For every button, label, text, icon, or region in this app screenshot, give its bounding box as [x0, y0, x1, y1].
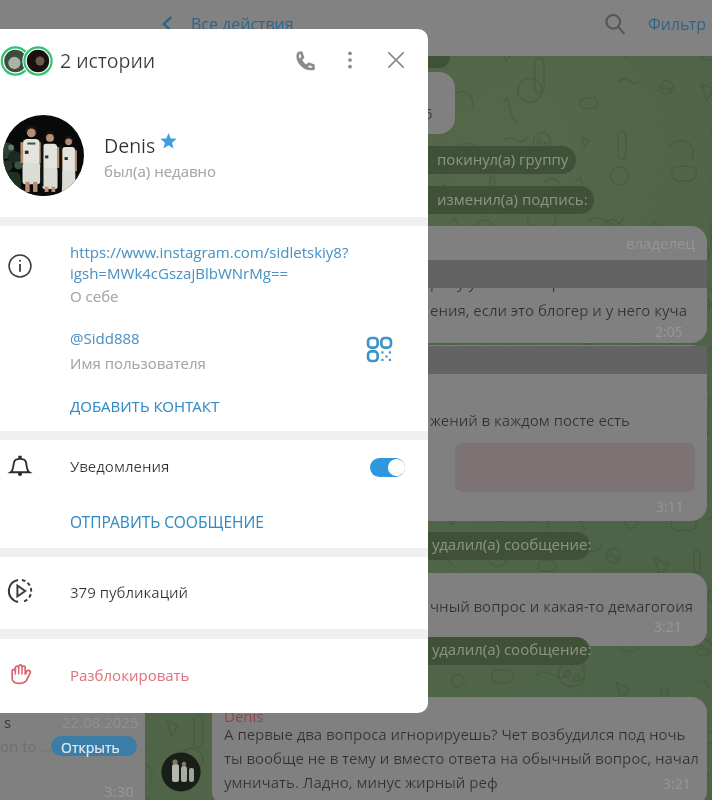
staticText: удалил(а) сообщение:	[432, 534, 592, 554]
button[interactable]: Разблокировать	[0, 639, 428, 713]
button[interactable]: Denis	[0, 91, 428, 217]
button[interactable]: Search	[592, 0, 638, 48]
staticText: Denis	[224, 706, 264, 726]
staticText: 3:21	[654, 617, 682, 636]
staticText: А первые два вопроса игнорируешь? Чет во…	[224, 724, 686, 744]
staticText: чный вопрос и какая-то демагогоия	[430, 596, 693, 616]
button[interactable]: Notifications toggle	[363, 448, 412, 486]
staticText: 22.08.2025	[62, 712, 139, 732]
staticText: О себе	[70, 286, 119, 306]
button[interactable]: ОТПРАВИТЬ СООБЩЕНИЕ	[0, 494, 428, 548]
button[interactable]: Уведомления	[0, 440, 428, 494]
button[interactable]: QR code	[357, 327, 401, 371]
staticText: ты вообще не в тему и вместо ответа на о…	[224, 748, 699, 768]
staticText: 3:30	[104, 781, 134, 800]
button[interactable]: Все действия	[157, 0, 294, 48]
button[interactable]: 379 публикаций	[0, 557, 428, 629]
staticText: удалил(а) сообщение:	[432, 639, 592, 659]
button[interactable]: More options	[327, 37, 373, 83]
button[interactable]: Stories	[0, 29, 60, 91]
button[interactable]: Фильтр	[640, 0, 698, 48]
staticText: Открыть	[61, 738, 120, 757]
staticText: Имя пользователя	[70, 353, 206, 373]
button[interactable]: ДОБАВИТЬ КОНТАКТ	[0, 381, 428, 431]
staticText: изменил(а) подпись:	[437, 189, 588, 209]
button[interactable]: @Sidd888	[0, 321, 428, 381]
staticText: on to ...	[0, 736, 53, 756]
staticText: 2 истории	[60, 47, 156, 74]
staticText: Все действия	[191, 13, 294, 35]
staticText: покинул(а) группу	[437, 149, 569, 169]
staticText: 5	[424, 103, 433, 123]
staticText: Уведомления	[70, 456, 170, 476]
staticText: 3:11	[656, 497, 684, 516]
staticText: ения, если это блогер и у него куча	[430, 300, 688, 320]
button[interactable]: https://www.instagram.com/sidletskiy8? i…	[0, 226, 428, 316]
staticText: 379 публикаций	[70, 582, 189, 602]
staticText: @Sidd888	[70, 328, 140, 348]
staticText: Разблокировать	[70, 665, 190, 685]
staticText: ДОБАВИТЬ КОНТАКТ	[70, 396, 220, 416]
staticText: был(а) недавно	[104, 161, 217, 181]
staticText: умничать. Ладно, минус жирный реф	[224, 772, 498, 792]
button[interactable]: Call	[282, 37, 328, 83]
staticText: 2:05	[655, 322, 683, 341]
button[interactable]: Close	[373, 37, 419, 83]
staticText: 3:21	[663, 774, 691, 793]
staticText: Фильтр	[648, 13, 706, 35]
staticText: s	[4, 712, 12, 732]
staticText: ОТПРАВИТЬ СООБЩЕНИЕ	[70, 511, 264, 532]
staticText: Denis	[104, 132, 156, 159]
staticText: владелец	[626, 233, 695, 253]
staticText: https://www.instagram.com/sidletskiy8? i…	[70, 242, 349, 284]
staticText: рану у кого-то ограничения	[430, 272, 634, 292]
staticText: жений в каждом посте есть	[430, 410, 630, 430]
